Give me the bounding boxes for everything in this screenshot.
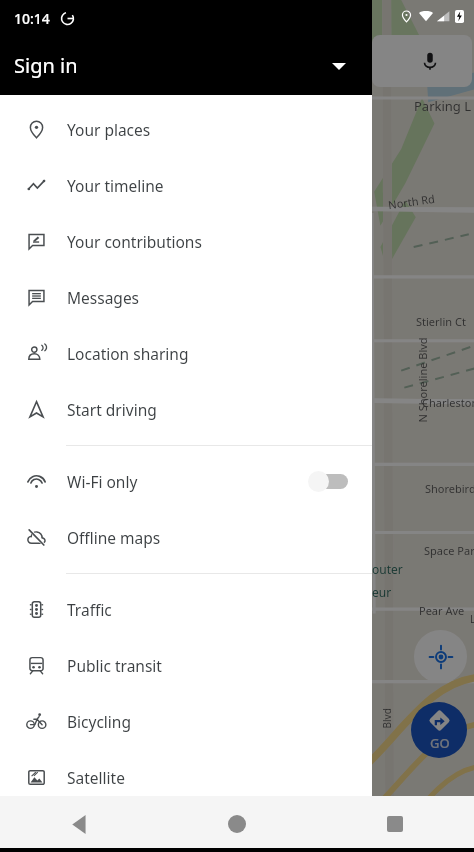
staticText: Parking L — [414, 97, 472, 115]
button[interactable]: Bicycling — [0, 693, 372, 749]
button[interactable]: Messages — [0, 269, 372, 325]
staticText: Blvd — [379, 707, 393, 728]
staticText: Your timeline — [67, 175, 164, 196]
staticText: Offline maps — [67, 527, 161, 548]
button[interactable]: Satellite — [0, 749, 372, 805]
staticText: N Shoreline Blvd — [414, 336, 429, 422]
button[interactable]: Sign in — [0, 36, 372, 95]
staticText: Stierlin Ct — [416, 314, 466, 329]
staticText: eur — [372, 584, 392, 600]
button[interactable]: Voice search — [372, 35, 472, 87]
button[interactable]: Your places — [0, 101, 372, 157]
staticText: Wi-Fi only — [67, 471, 138, 492]
button[interactable]: Your timeline — [0, 157, 372, 213]
button[interactable]: Recent apps — [316, 796, 474, 852]
staticText: Your contributions — [67, 231, 202, 252]
button[interactable]: Your contributions — [0, 213, 372, 269]
staticText: La — [470, 612, 474, 626]
staticText: Start driving — [67, 399, 157, 420]
button[interactable]: Offline maps — [0, 509, 372, 565]
button[interactable]: Home — [158, 796, 316, 852]
staticText: Charleston R — [422, 395, 474, 410]
button[interactable]: Wi-Fi only — [0, 453, 372, 509]
staticText: Sign in — [14, 52, 78, 79]
staticText: Messages — [67, 287, 140, 308]
staticText: Pear Ave — [419, 603, 465, 618]
other: Voice search — [419, 50, 441, 72]
staticText: Bicycling — [67, 711, 131, 732]
staticText: Space Park W — [424, 543, 474, 558]
staticText: Satellite — [67, 767, 125, 788]
staticText: Your places — [67, 119, 151, 140]
button[interactable]: Public transit — [0, 637, 372, 693]
staticText: North Rd — [387, 191, 436, 212]
staticText: Traffic — [67, 599, 112, 620]
staticText: Public transit — [67, 655, 162, 676]
button[interactable]: GO — [411, 702, 467, 758]
button[interactable]: Back — [0, 796, 158, 852]
staticText: GO — [430, 734, 450, 752]
staticText: outer — [372, 561, 403, 577]
button[interactable]: Location sharing — [0, 325, 372, 381]
button[interactable]: Traffic — [0, 581, 372, 637]
staticText: Shorebird Wa — [425, 481, 474, 496]
button[interactable]: My location — [414, 630, 467, 683]
staticText: 10:14 — [14, 9, 50, 28]
staticText: Location sharing — [67, 343, 189, 364]
button[interactable]: Start driving — [0, 381, 372, 437]
